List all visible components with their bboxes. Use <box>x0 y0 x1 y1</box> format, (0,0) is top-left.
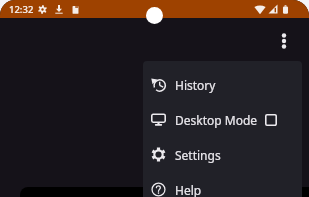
button[interactable]: History <box>143 67 302 102</box>
staticText: 12:32 <box>9 3 34 16</box>
button[interactable]: Settings <box>143 137 302 172</box>
staticText: Desktop Mode <box>175 112 258 128</box>
button[interactable]: More options <box>272 29 296 53</box>
staticText: Help <box>175 182 202 197</box>
staticText: Settings <box>175 147 221 163</box>
button[interactable]: Desktop Mode <box>143 102 302 137</box>
staticText: History <box>175 77 216 93</box>
button[interactable]: Help <box>143 172 302 197</box>
